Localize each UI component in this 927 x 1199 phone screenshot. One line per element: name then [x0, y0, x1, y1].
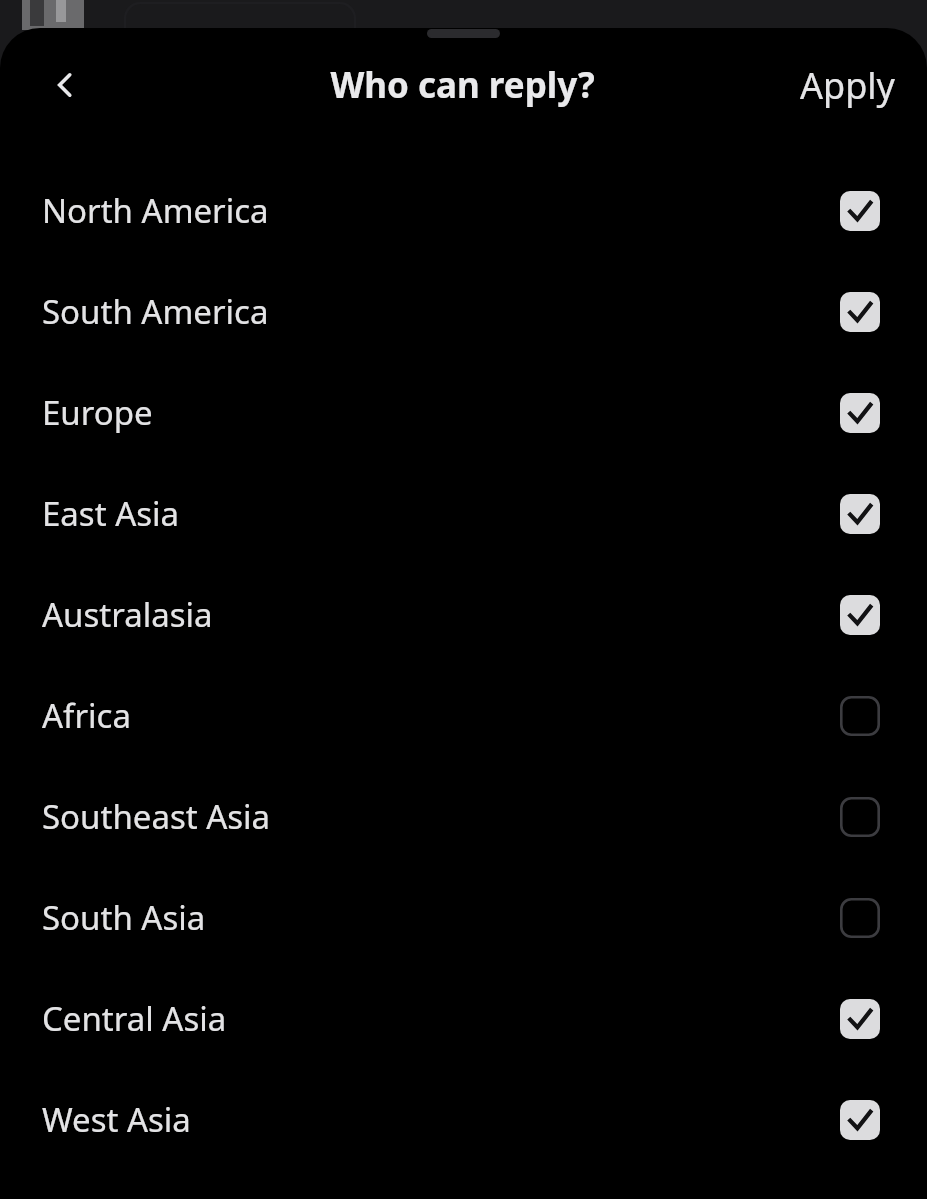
button[interactable]: Australasia [0, 564, 927, 665]
staticText: Southeast Asia [42, 794, 840, 839]
staticText: South America [42, 289, 840, 334]
staticText: North America [42, 188, 840, 233]
staticText: South Asia [42, 895, 840, 940]
staticText: Central Asia [42, 996, 840, 1041]
staticText: East Asia [42, 491, 840, 536]
staticText: Europe [42, 390, 840, 435]
button[interactable]: East Asia [0, 463, 927, 564]
button[interactable]: Central Asia [0, 968, 927, 1069]
button[interactable]: South Asia [0, 867, 927, 968]
button[interactable]: Southeast Asia [0, 766, 927, 867]
button[interactable]: Europe [0, 362, 927, 463]
staticText: Apply [800, 61, 895, 110]
staticText: Who can reply? [330, 61, 595, 109]
staticText: Australasia [42, 592, 840, 637]
staticText: West Asia [42, 1097, 840, 1142]
button[interactable]: Apply [794, 53, 901, 118]
button[interactable]: North America [0, 160, 927, 261]
button[interactable]: Back [33, 53, 97, 117]
button[interactable]: Africa [0, 665, 927, 766]
staticText: Africa [42, 693, 840, 738]
button[interactable]: South America [0, 261, 927, 362]
button[interactable]: West Asia [0, 1069, 927, 1170]
